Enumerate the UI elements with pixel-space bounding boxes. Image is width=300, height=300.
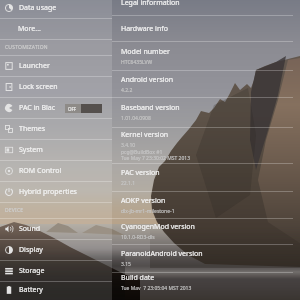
button[interactable]: More... bbox=[0, 19, 112, 39]
staticText: CyanogenMod version bbox=[121, 222, 195, 232]
staticText: 4.2.2 bbox=[121, 87, 133, 94]
staticText: DEVICE bbox=[5, 207, 24, 214]
button[interactable]: ParanoidAndroid version bbox=[112, 245, 300, 272]
staticText: Storage bbox=[19, 266, 45, 276]
staticText: Sound bbox=[19, 224, 41, 234]
staticText: Battery bbox=[19, 285, 43, 295]
button[interactable]: CyanogenMod version bbox=[112, 219, 300, 244]
staticText: ParanoidAndroid version bbox=[121, 249, 203, 259]
staticText: ROM Control bbox=[19, 166, 62, 176]
button[interactable]: AOKP version bbox=[112, 192, 300, 218]
button[interactable]: PAC version bbox=[112, 164, 300, 191]
staticText: Android version bbox=[121, 75, 174, 85]
staticText: Tue May 7 23:05:04 MST 2013 bbox=[121, 285, 192, 290]
button[interactable]: Baseband version bbox=[112, 98, 300, 127]
button[interactable]: ROM Control bbox=[0, 161, 112, 181]
staticText: CUSTOMIZATION bbox=[5, 44, 48, 51]
staticText: OFF bbox=[68, 106, 77, 112]
staticText: 3.4.10 pcg@BuildBox #1 Tue May 7 23:30:0… bbox=[121, 142, 191, 161]
staticText: PAC version bbox=[121, 168, 160, 178]
staticText: 22.1.1 bbox=[121, 180, 136, 187]
button[interactable]: Storage bbox=[0, 261, 112, 281]
button[interactable]: PAC in Blac bbox=[0, 98, 112, 118]
staticText: Baseband version bbox=[121, 103, 180, 113]
staticText: More... bbox=[18, 24, 41, 34]
button[interactable]: Data usage bbox=[0, 0, 112, 18]
button[interactable]: Android version bbox=[112, 71, 300, 97]
button[interactable]: Lock screen bbox=[0, 77, 112, 97]
staticText: 3.15 bbox=[121, 261, 131, 268]
staticText: dlx-jb-mr1-milestone-1 bbox=[121, 208, 175, 215]
button[interactable]: System bbox=[0, 140, 112, 160]
staticText: Themes bbox=[19, 124, 46, 134]
staticText: HTC6435LVW bbox=[121, 59, 153, 66]
staticText: Kernel version bbox=[121, 130, 169, 140]
staticText: PAC in Blac bbox=[19, 103, 56, 113]
button[interactable]: Sound bbox=[0, 219, 112, 239]
button[interactable]: Display bbox=[0, 240, 112, 260]
staticText: Display bbox=[19, 245, 43, 255]
button[interactable]: Hybrid properties bbox=[0, 182, 112, 202]
button[interactable]: Themes bbox=[0, 119, 112, 139]
button[interactable]: Launcher bbox=[0, 56, 112, 76]
button[interactable]: Kernel version bbox=[112, 128, 300, 163]
staticText: Lock screen bbox=[19, 82, 58, 92]
staticText: System bbox=[19, 145, 43, 155]
staticText: 1.01.04.0908 bbox=[121, 115, 151, 122]
staticText: AOKP version bbox=[121, 196, 166, 206]
staticText: Legal information bbox=[121, 0, 180, 8]
button[interactable]: Build date bbox=[112, 273, 300, 290]
staticText: Hybrid properties bbox=[19, 187, 77, 197]
button[interactable]: Battery bbox=[0, 282, 112, 298]
button[interactable]: Model number bbox=[112, 42, 300, 70]
staticText: Data usage bbox=[19, 3, 57, 13]
staticText: Build date bbox=[121, 273, 155, 283]
staticText: Model number bbox=[121, 47, 170, 57]
button[interactable]: Hardware info bbox=[112, 16, 300, 41]
staticText: Launcher bbox=[19, 61, 50, 71]
button[interactable]: Legal information bbox=[112, 0, 300, 15]
staticText: Hardware info bbox=[121, 24, 168, 34]
staticText: 10.1.0-RD3-dls bbox=[121, 234, 155, 241]
